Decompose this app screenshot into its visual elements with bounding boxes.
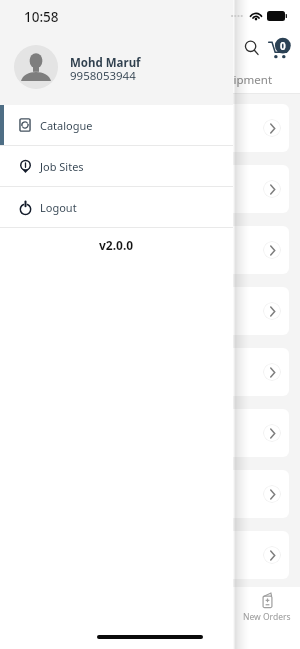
button[interactable] <box>10 287 289 335</box>
staticText: Job Sites <box>40 159 84 174</box>
button[interactable]: Equipment <box>213 72 273 88</box>
staticText: New Orders <box>243 611 291 623</box>
button[interactable] <box>10 531 289 579</box>
button[interactable]: Search <box>239 35 265 61</box>
staticText: 10:58 <box>24 8 59 26</box>
staticText: 0 <box>280 39 286 53</box>
button[interactable]: Job Sites <box>0 146 233 186</box>
staticText: Catalogue <box>40 118 93 133</box>
button[interactable]: Shopping cart <box>266 35 292 61</box>
button[interactable] <box>10 348 289 396</box>
staticText: Mohd Maruf <box>70 55 141 71</box>
button[interactable] <box>10 226 289 274</box>
button[interactable]: New Orders <box>243 592 291 623</box>
button[interactable] <box>10 470 289 518</box>
button[interactable] <box>10 165 289 213</box>
button[interactable] <box>10 104 289 152</box>
staticText: 9958053944 <box>70 68 136 84</box>
button[interactable]: Logout <box>0 187 233 227</box>
button[interactable] <box>10 409 289 457</box>
staticText: v2.0.0 <box>99 237 134 253</box>
button[interactable]: Catalogue <box>0 105 233 145</box>
staticText: Logout <box>40 200 77 215</box>
